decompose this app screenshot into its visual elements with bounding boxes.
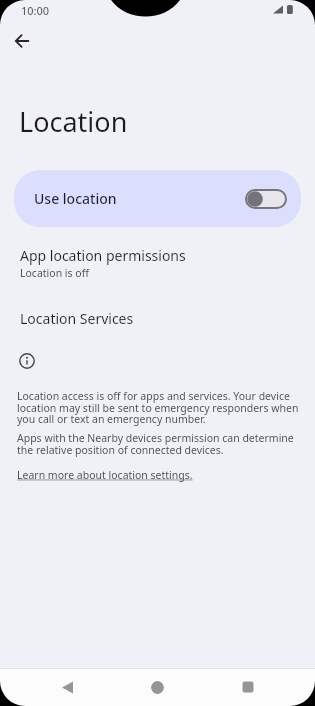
button[interactable]: Location Services <box>0 303 315 335</box>
staticText: Location is off <box>20 266 89 280</box>
button[interactable]: Learn more about location settings. <box>17 468 193 482</box>
button[interactable] <box>53 673 81 701</box>
button[interactable] <box>234 673 262 701</box>
staticText: Location Services <box>20 309 134 328</box>
staticText: Location access is off for apps and serv… <box>17 389 299 426</box>
staticText: Location <box>19 103 128 140</box>
staticText: App location permissions <box>20 246 186 265</box>
staticText: 10:00 <box>21 3 50 18</box>
button[interactable]: App location permissions <box>0 243 315 285</box>
button[interactable] <box>8 27 36 55</box>
staticText: Learn more about location settings. <box>17 468 193 482</box>
button[interactable] <box>143 673 171 701</box>
staticText: Apps with the Nearby devices permission … <box>17 431 294 457</box>
staticText: Use location <box>34 189 117 208</box>
button[interactable]: Use location <box>14 170 301 227</box>
